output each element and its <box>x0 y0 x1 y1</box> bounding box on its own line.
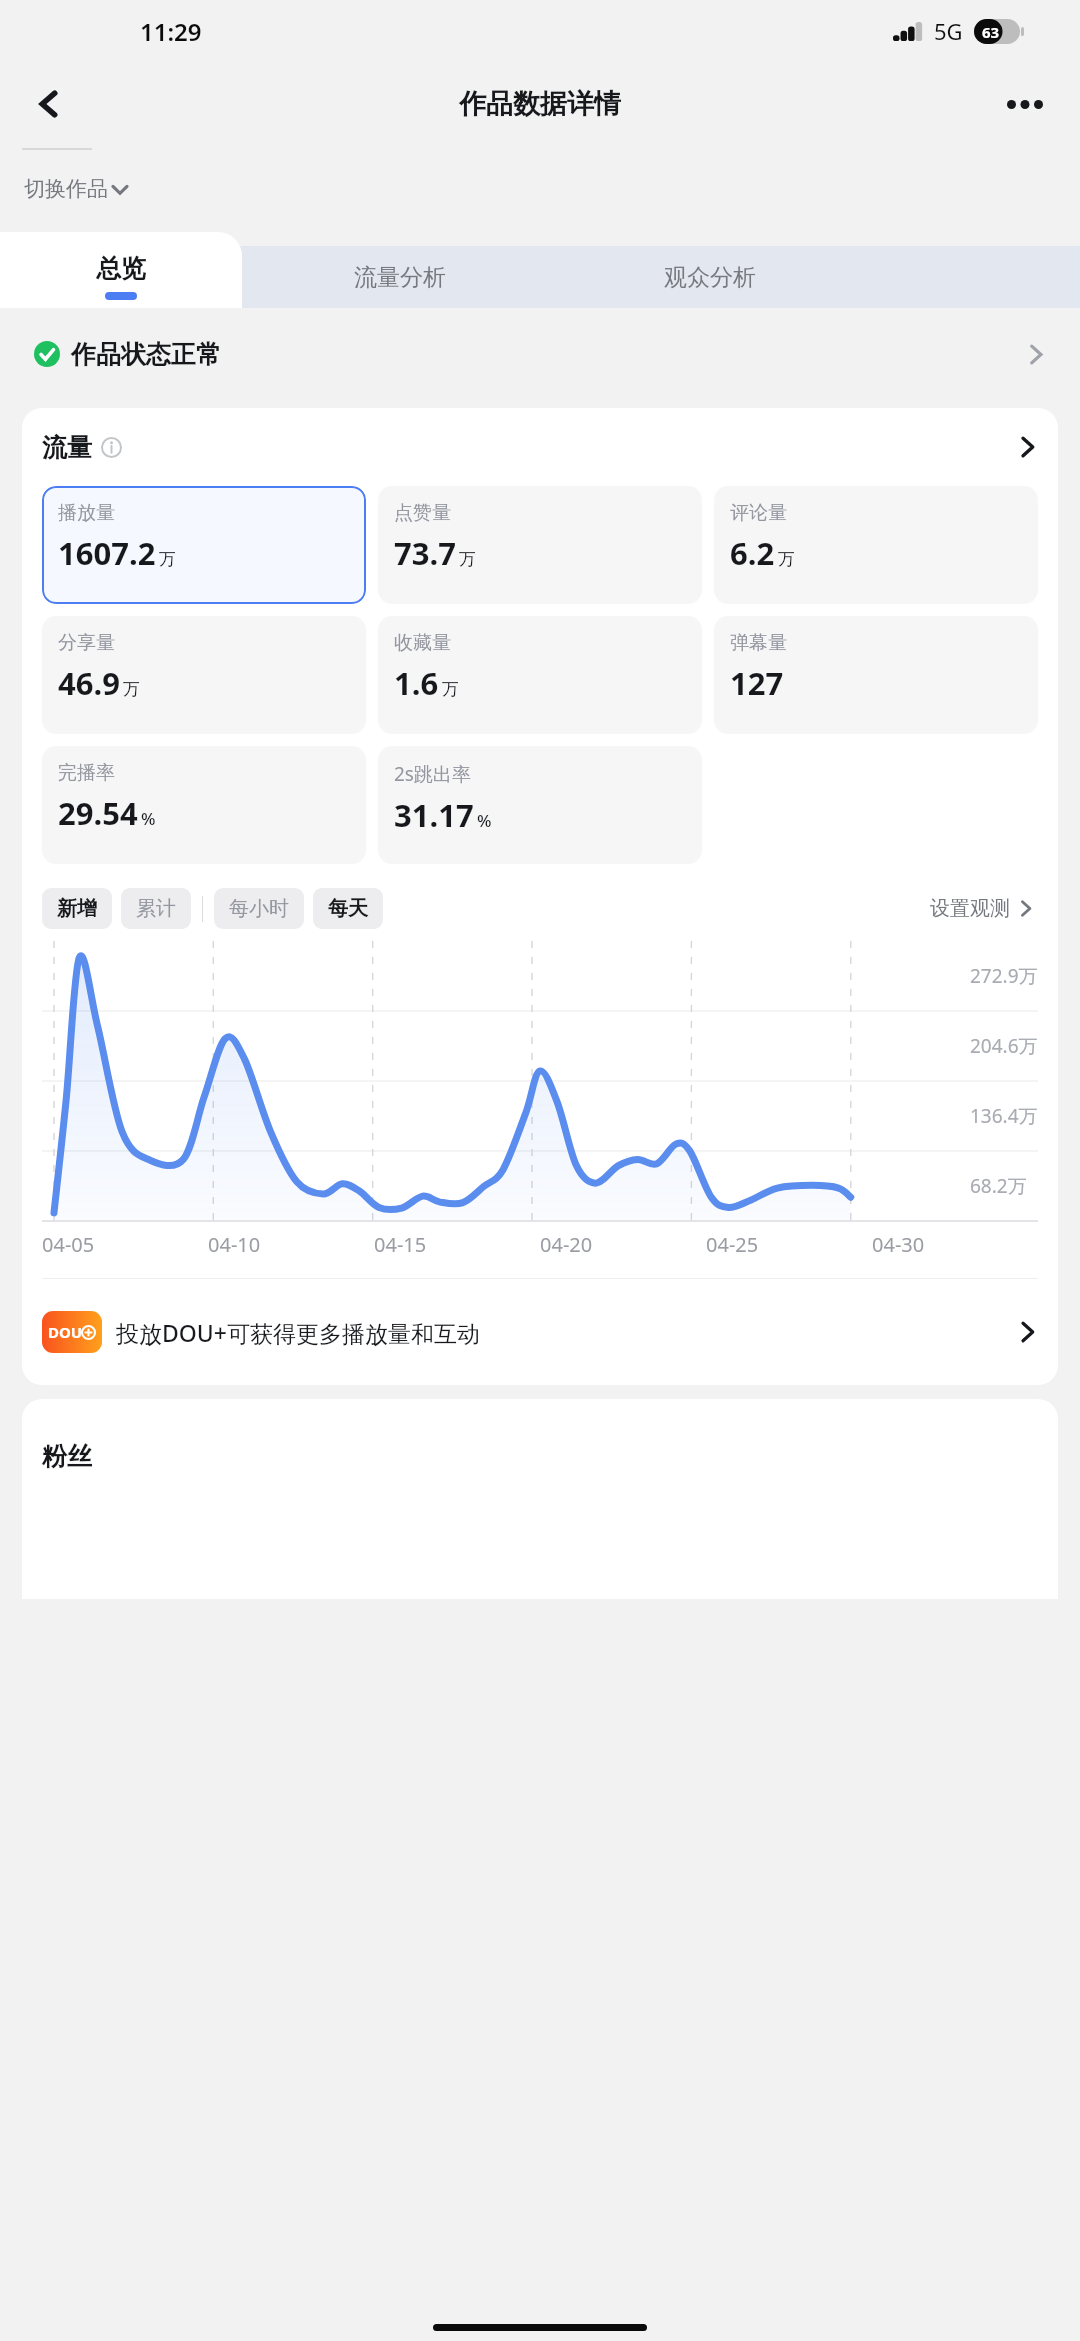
staticText: 新增 <box>57 896 97 921</box>
button[interactable]: 完播率 <box>42 746 366 864</box>
staticText: 5G <box>934 16 963 46</box>
button[interactable]: 累计 <box>121 888 191 929</box>
staticText: 切换作品 <box>24 176 108 202</box>
staticText: 每小时 <box>229 896 289 921</box>
button[interactable]: 评论量 <box>714 486 1038 604</box>
staticText: 11:29 <box>140 15 202 48</box>
button[interactable]: 2s跳出率 <box>378 746 702 864</box>
button[interactable]: 分享量 <box>42 616 366 734</box>
staticText: 评论量 <box>730 501 787 525</box>
staticText: 万 <box>442 679 459 700</box>
staticText: 流量分析 <box>354 263 446 292</box>
staticText: % <box>141 807 156 830</box>
button[interactable]: DOU <box>22 1279 1058 1385</box>
staticText: 2s跳出率 <box>394 761 471 787</box>
staticText: 完播率 <box>58 761 115 785</box>
staticText: 观众分析 <box>664 263 756 292</box>
button[interactable]: 收藏量 <box>378 616 702 734</box>
staticText: 每天 <box>328 896 368 921</box>
staticText: 万 <box>459 549 476 570</box>
button[interactable]: More options <box>996 75 1054 133</box>
button[interactable]: 切换作品 <box>18 170 133 208</box>
staticText: 万 <box>159 549 176 570</box>
staticText: 累计 <box>136 896 176 921</box>
button[interactable]: 总览 <box>0 232 242 308</box>
staticText: % <box>477 809 492 832</box>
staticText: 分享量 <box>58 631 115 655</box>
staticText: 6.2 <box>730 532 775 574</box>
staticText: 流量 <box>42 432 92 463</box>
staticText: 1607.2 <box>58 532 156 574</box>
staticText: 204.6万 <box>970 1033 1038 1059</box>
button[interactable]: 流量 <box>22 408 1058 486</box>
staticText: 弹幕量 <box>730 631 787 655</box>
staticText: 作品数据详情 <box>459 87 621 121</box>
button[interactable]: 弹幕量 <box>714 616 1038 734</box>
staticText: 总览 <box>96 253 146 284</box>
staticText: 播放量 <box>58 501 115 525</box>
staticText: 万 <box>123 679 140 700</box>
button[interactable]: 流量分析 <box>250 246 550 308</box>
button[interactable]: 点赞量 <box>378 486 702 604</box>
staticText: 收藏量 <box>394 631 451 655</box>
staticText: DOU <box>48 1322 83 1342</box>
button[interactable]: 每小时 <box>214 888 304 929</box>
staticText: 1.6 <box>394 662 439 704</box>
staticText: 63 <box>982 22 1000 42</box>
staticText: 31.17 <box>394 794 474 836</box>
staticText: 04-20 <box>540 1231 593 1258</box>
staticText: 04-30 <box>872 1231 925 1258</box>
staticText: 127 <box>730 662 784 704</box>
staticText: 04-05 <box>42 1231 95 1258</box>
staticText: 68.2万 <box>970 1173 1027 1199</box>
button[interactable]: 观众分析 <box>560 246 860 308</box>
staticText: 设置观测 <box>930 896 1010 921</box>
button[interactable]: 每天 <box>313 888 383 929</box>
staticText: 04-10 <box>208 1231 261 1258</box>
button[interactable]: Back <box>20 75 78 133</box>
button[interactable]: 播放量 <box>42 486 366 604</box>
staticText: 73.7 <box>394 532 456 574</box>
staticText: 作品状态正常 <box>71 339 221 370</box>
staticText: 272.9万 <box>970 963 1038 989</box>
button[interactable]: 作品状态正常 <box>0 314 1080 394</box>
staticText: 29.54 <box>58 792 138 834</box>
button[interactable]: 设置观测 <box>926 892 1038 925</box>
staticText: 04-25 <box>706 1231 759 1258</box>
staticText: 投放DOU+可获得更多播放量和互动 <box>116 1317 480 1348</box>
staticText: 136.4万 <box>970 1103 1038 1129</box>
staticText: 04-15 <box>374 1231 427 1258</box>
staticText: 46.9 <box>58 662 120 704</box>
staticText: 万 <box>778 549 795 570</box>
staticText: 点赞量 <box>394 501 451 525</box>
staticText: 粉丝 <box>42 1441 92 1472</box>
button[interactable]: 新增 <box>42 888 112 929</box>
